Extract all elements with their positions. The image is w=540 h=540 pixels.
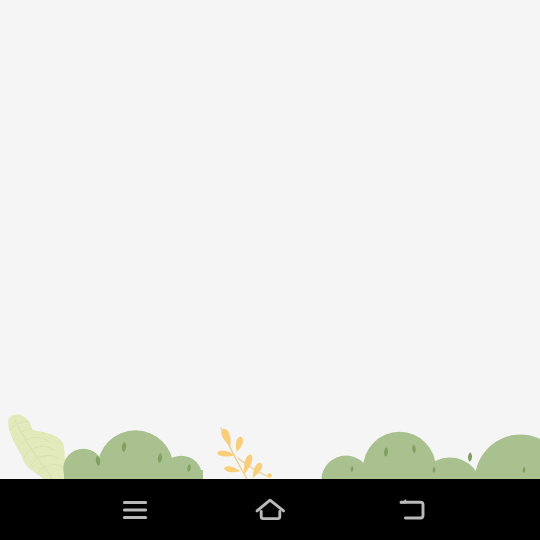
button[interactable]: Back [382,479,442,540]
button[interactable]: Recents [105,479,165,540]
button[interactable]: Home [240,479,300,540]
